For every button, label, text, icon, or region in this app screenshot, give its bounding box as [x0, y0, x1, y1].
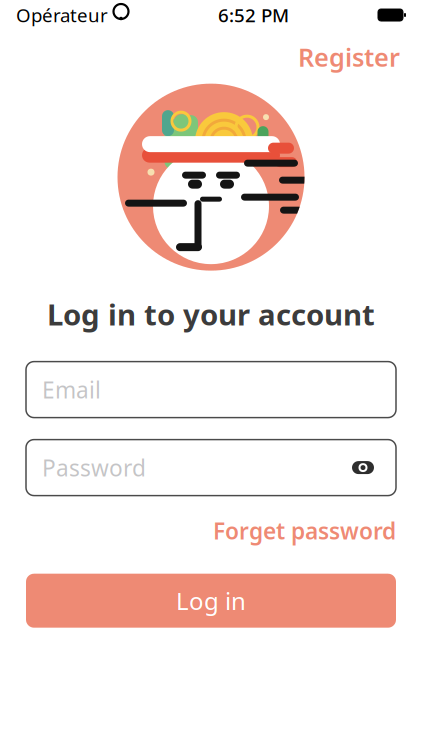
staticText: Opérateur [16, 3, 108, 27]
button[interactable]: Forget password [213, 512, 396, 550]
staticText: Register [298, 40, 400, 74]
staticText: 6:52 PM [218, 3, 289, 27]
button[interactable]: Log in [26, 574, 396, 628]
staticText: Log in [176, 585, 246, 617]
button[interactable]: Show password [346, 451, 380, 485]
staticText: Log in to your account [47, 295, 375, 334]
staticText: Password [42, 452, 146, 483]
staticText: Forget password [213, 516, 396, 546]
button[interactable]: Register [294, 36, 404, 78]
staticText: Email [42, 374, 101, 405]
